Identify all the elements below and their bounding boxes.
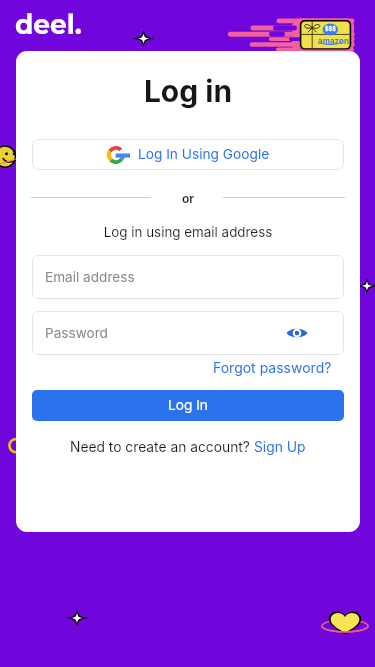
staticText: Log In Using Google [138, 146, 270, 163]
staticText: deel. [15, 8, 82, 40]
staticText: Email address [45, 269, 135, 285]
button[interactable]: Log In Using Google [32, 139, 344, 170]
staticText: $$$ [325, 26, 336, 33]
staticText: Log in using email address [16, 224, 360, 240]
button[interactable]: Sign Up [254, 439, 306, 456]
button[interactable]: Log In [32, 390, 344, 421]
button[interactable]: Email address [32, 255, 344, 299]
staticText: Log In [168, 397, 208, 414]
button[interactable]: Forgot password? [211, 357, 334, 378]
button[interactable]: Password [32, 311, 344, 355]
staticText: Need to create an account? [70, 439, 254, 456]
staticText: Log in [16, 73, 360, 109]
button[interactable]: Show password [283, 319, 311, 347]
staticText: Forgot password? [213, 359, 332, 376]
staticText: amazon [318, 36, 349, 46]
staticText: Password [45, 325, 108, 341]
staticText: or [16, 191, 360, 206]
